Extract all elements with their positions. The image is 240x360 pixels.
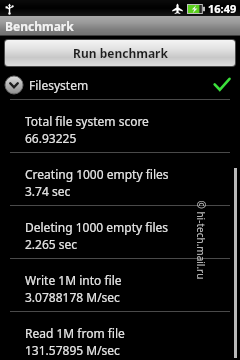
staticText: Filesystem [29, 77, 89, 93]
staticText: 3.0788178 M/sec [25, 289, 120, 305]
button[interactable]: Collapse Filesystem section [0, 71, 240, 99]
staticText: 2.265 sec [25, 236, 78, 252]
other: Collapse Filesystem section [5, 76, 23, 94]
button[interactable]: Deleting 1000 empty files [0, 206, 240, 258]
button[interactable]: Write 1M into file [0, 259, 240, 311]
staticText: Deleting 1000 empty files [25, 219, 169, 235]
button[interactable]: Run benchmark [5, 40, 235, 66]
staticText: 66.93225 [25, 130, 77, 146]
staticText: 16:49 [208, 1, 237, 16]
staticText: Total file system score [25, 113, 149, 129]
staticText: Run benchmark [73, 45, 168, 61]
staticText: 131.57895 M/sec [25, 342, 120, 358]
staticText: © hi-tech.mail.ru [193, 200, 207, 279]
staticText: Read 1M from file [25, 325, 125, 341]
staticText: Creating 1000 empty files [25, 166, 169, 182]
staticText: 3.74 sec [25, 183, 71, 199]
button[interactable]: Read 1M from file [0, 312, 240, 360]
staticText: Benchmark [5, 18, 74, 34]
staticText: Write 1M into file [25, 272, 122, 288]
button[interactable]: Total file system score [0, 100, 240, 152]
button[interactable]: Creating 1000 empty files [0, 153, 240, 205]
